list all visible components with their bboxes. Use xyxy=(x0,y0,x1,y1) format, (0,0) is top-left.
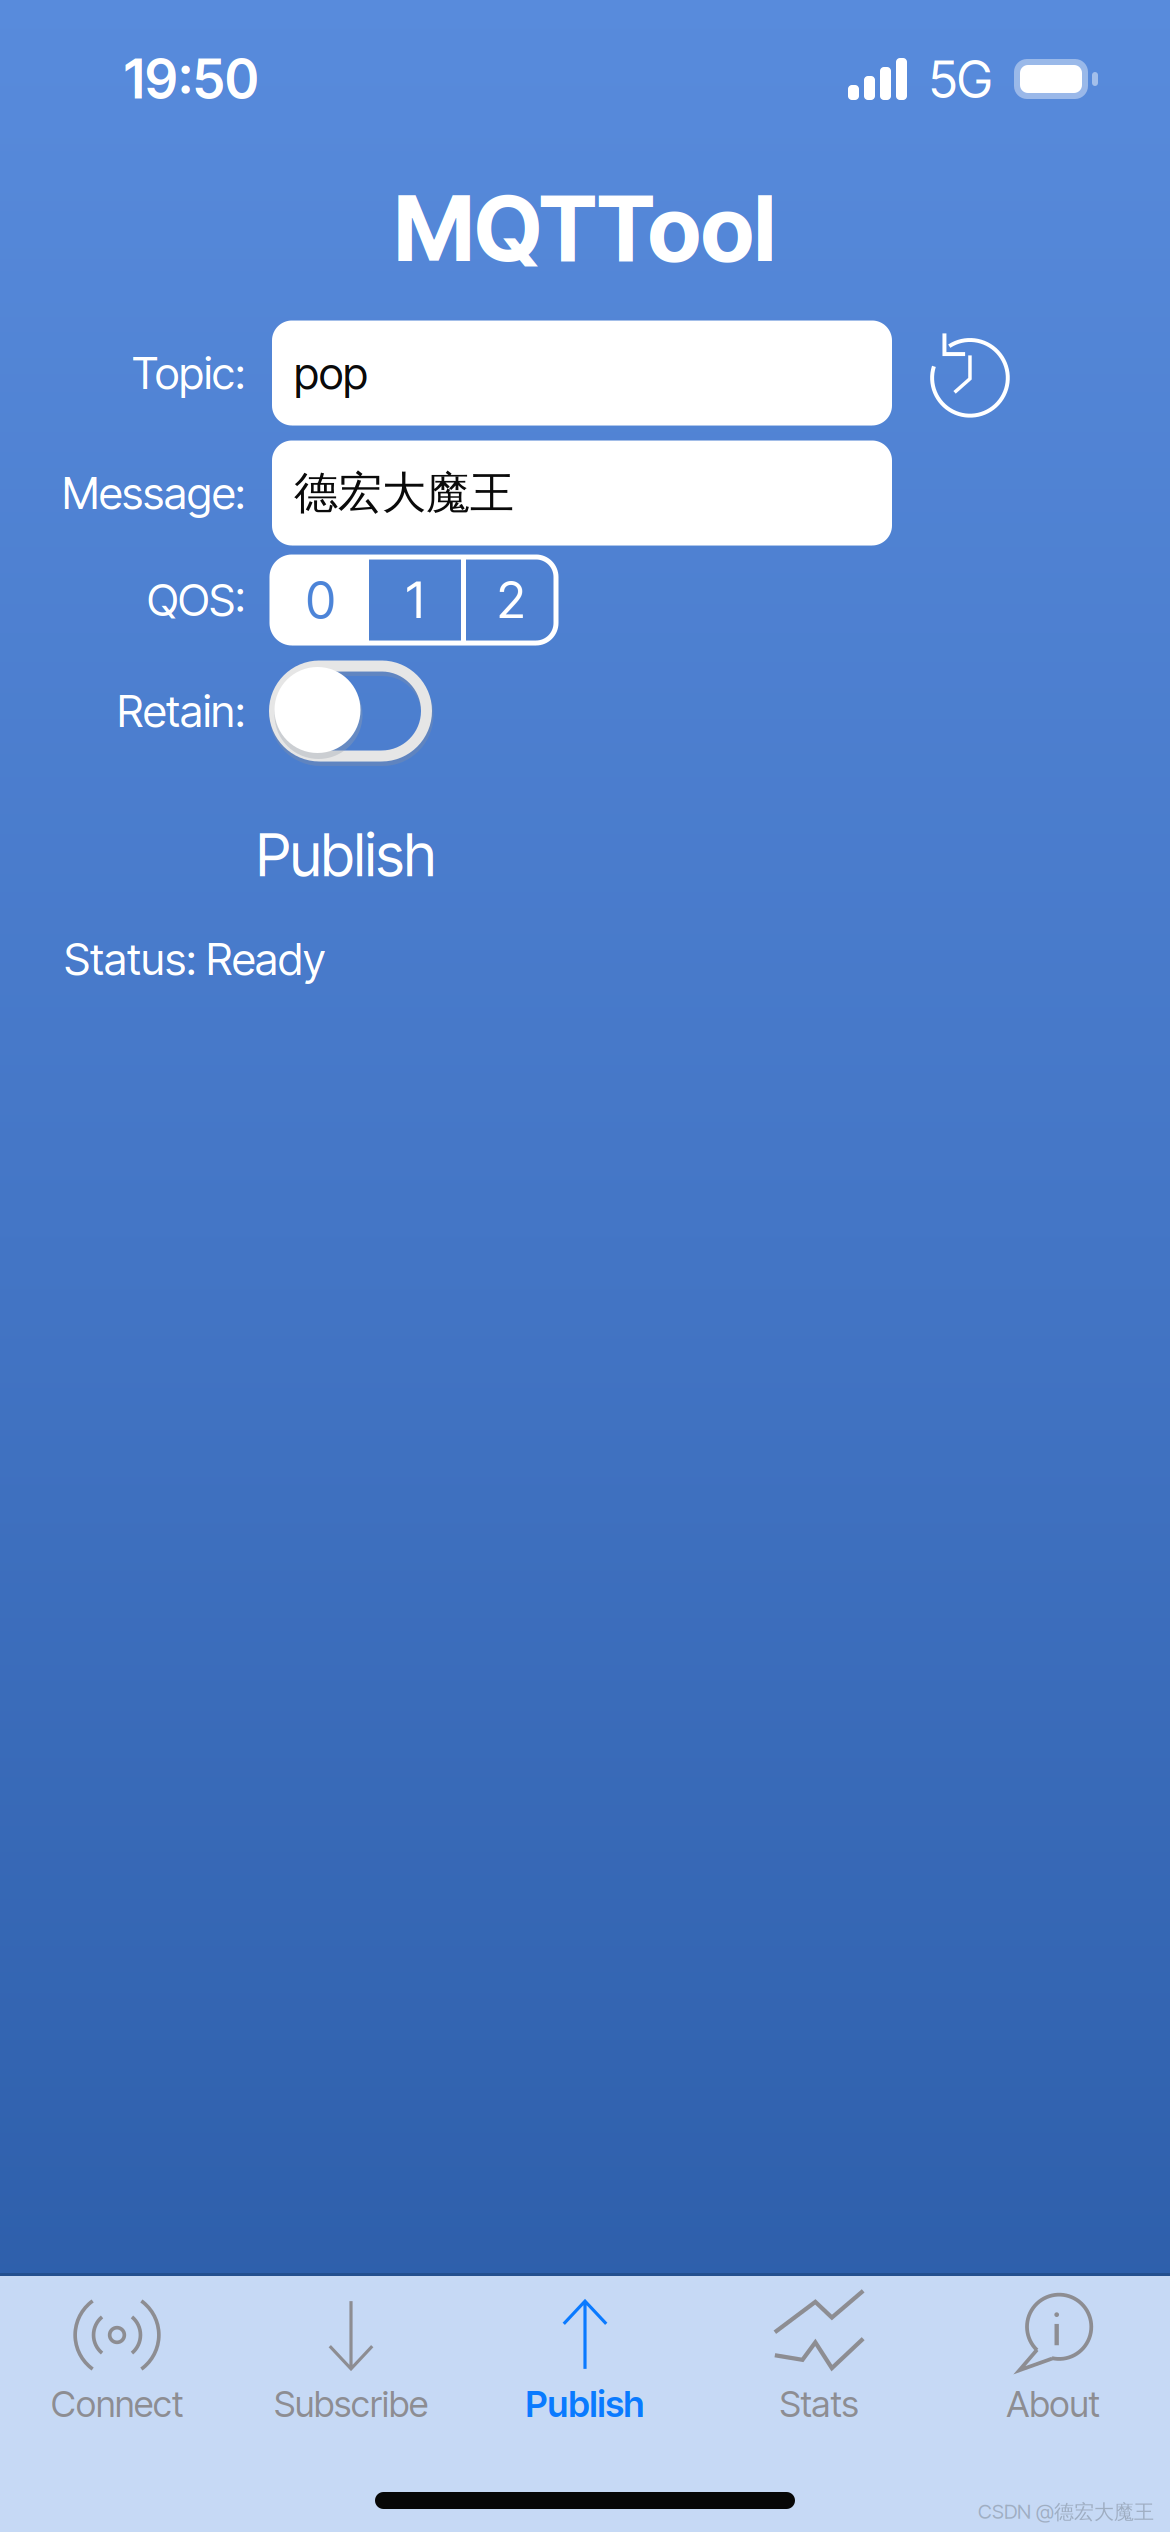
button[interactable]: 德宏大魔王 xyxy=(272,440,892,545)
staticText: Status: Ready xyxy=(64,932,325,986)
button[interactable]: Stats xyxy=(702,2276,936,2452)
staticText: 1 xyxy=(406,569,424,631)
staticText: Publish xyxy=(525,2382,644,2426)
staticText: MQTTool xyxy=(394,173,776,283)
staticText: Subscribe xyxy=(274,2382,428,2426)
button[interactable]: 2 xyxy=(466,557,556,643)
button[interactable]: Publish xyxy=(468,2276,702,2452)
staticText: Retain: xyxy=(117,684,245,738)
button[interactable]: History xyxy=(922,329,1010,417)
staticText: Connect xyxy=(51,2382,183,2426)
staticText: 19:50 xyxy=(124,47,259,111)
button[interactable]: Retain xyxy=(271,664,430,758)
staticText: pop xyxy=(294,346,368,400)
staticText: Stats xyxy=(779,2382,858,2426)
staticText: CSDN @德宏大魔王 xyxy=(978,2499,1154,2525)
button[interactable]: pop xyxy=(272,320,892,425)
button[interactable]: Connect xyxy=(0,2276,234,2452)
staticText: Message: xyxy=(62,466,245,520)
staticText: 德宏大魔王 xyxy=(294,465,514,521)
button[interactable]: Subscribe xyxy=(234,2276,468,2452)
button[interactable]: About xyxy=(936,2276,1170,2452)
staticText: About xyxy=(1006,2382,1099,2426)
staticText: Publish xyxy=(256,819,436,890)
staticText: 0 xyxy=(306,569,335,631)
staticText: QOS: xyxy=(147,573,245,627)
button[interactable]: 1 xyxy=(369,557,461,643)
staticText: Topic: xyxy=(132,346,245,400)
button[interactable]: Publish xyxy=(236,812,456,898)
staticText: 5G xyxy=(929,48,992,110)
button[interactable]: 0 xyxy=(272,557,369,643)
staticText: 2 xyxy=(497,569,525,631)
